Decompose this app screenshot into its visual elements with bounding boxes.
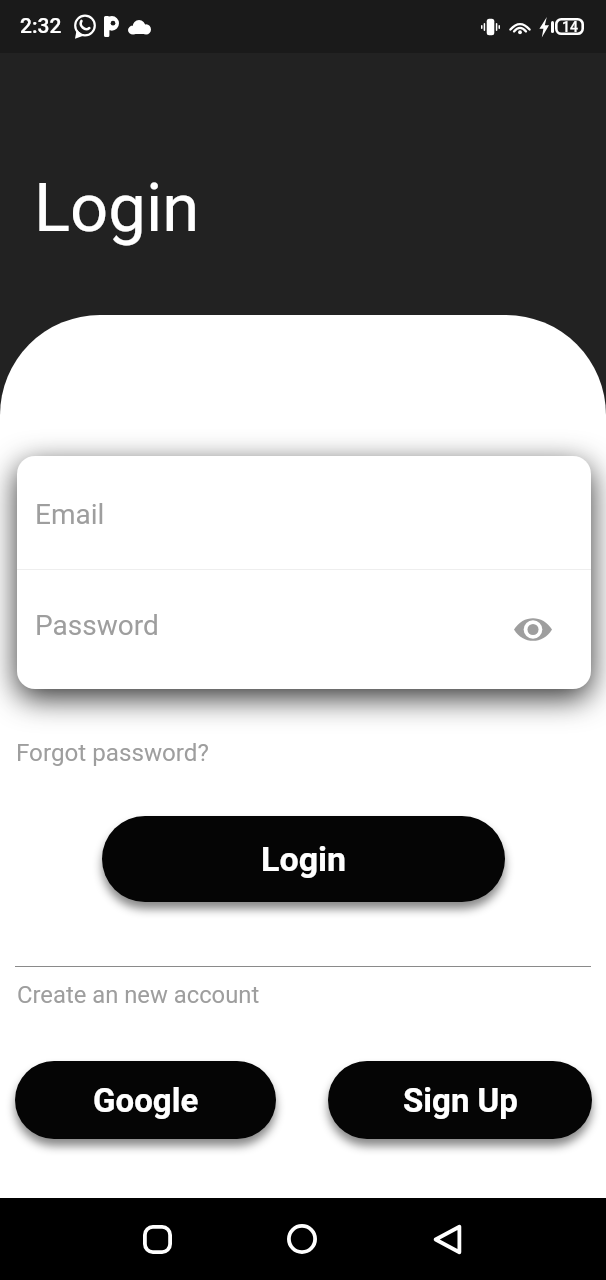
button[interactable]: Sign Up (328, 1061, 592, 1139)
button[interactable]: Create an new account (11, 975, 266, 1015)
staticText: Sign Up (403, 1081, 518, 1120)
button[interactable]: Show password (509, 605, 557, 653)
staticText: Forgot password? (16, 739, 209, 767)
staticText: Password (35, 609, 159, 642)
staticText: Email (35, 498, 105, 531)
button[interactable]: Password (17, 570, 591, 689)
button[interactable]: Google (15, 1061, 276, 1139)
button[interactable]: Home (270, 1207, 334, 1271)
button[interactable]: Forgot password? (10, 733, 215, 773)
staticText: Login (34, 169, 200, 248)
staticText: 14 (562, 19, 578, 35)
staticText: Login (261, 839, 347, 879)
staticText: 2:32 (20, 14, 62, 39)
button[interactable]: Email (17, 456, 591, 569)
button[interactable]: Recent apps (125, 1207, 189, 1271)
button[interactable]: Back (415, 1207, 479, 1271)
staticText: Create an new account (17, 981, 260, 1009)
button[interactable]: Login (102, 816, 505, 902)
staticText: Google (93, 1081, 199, 1120)
